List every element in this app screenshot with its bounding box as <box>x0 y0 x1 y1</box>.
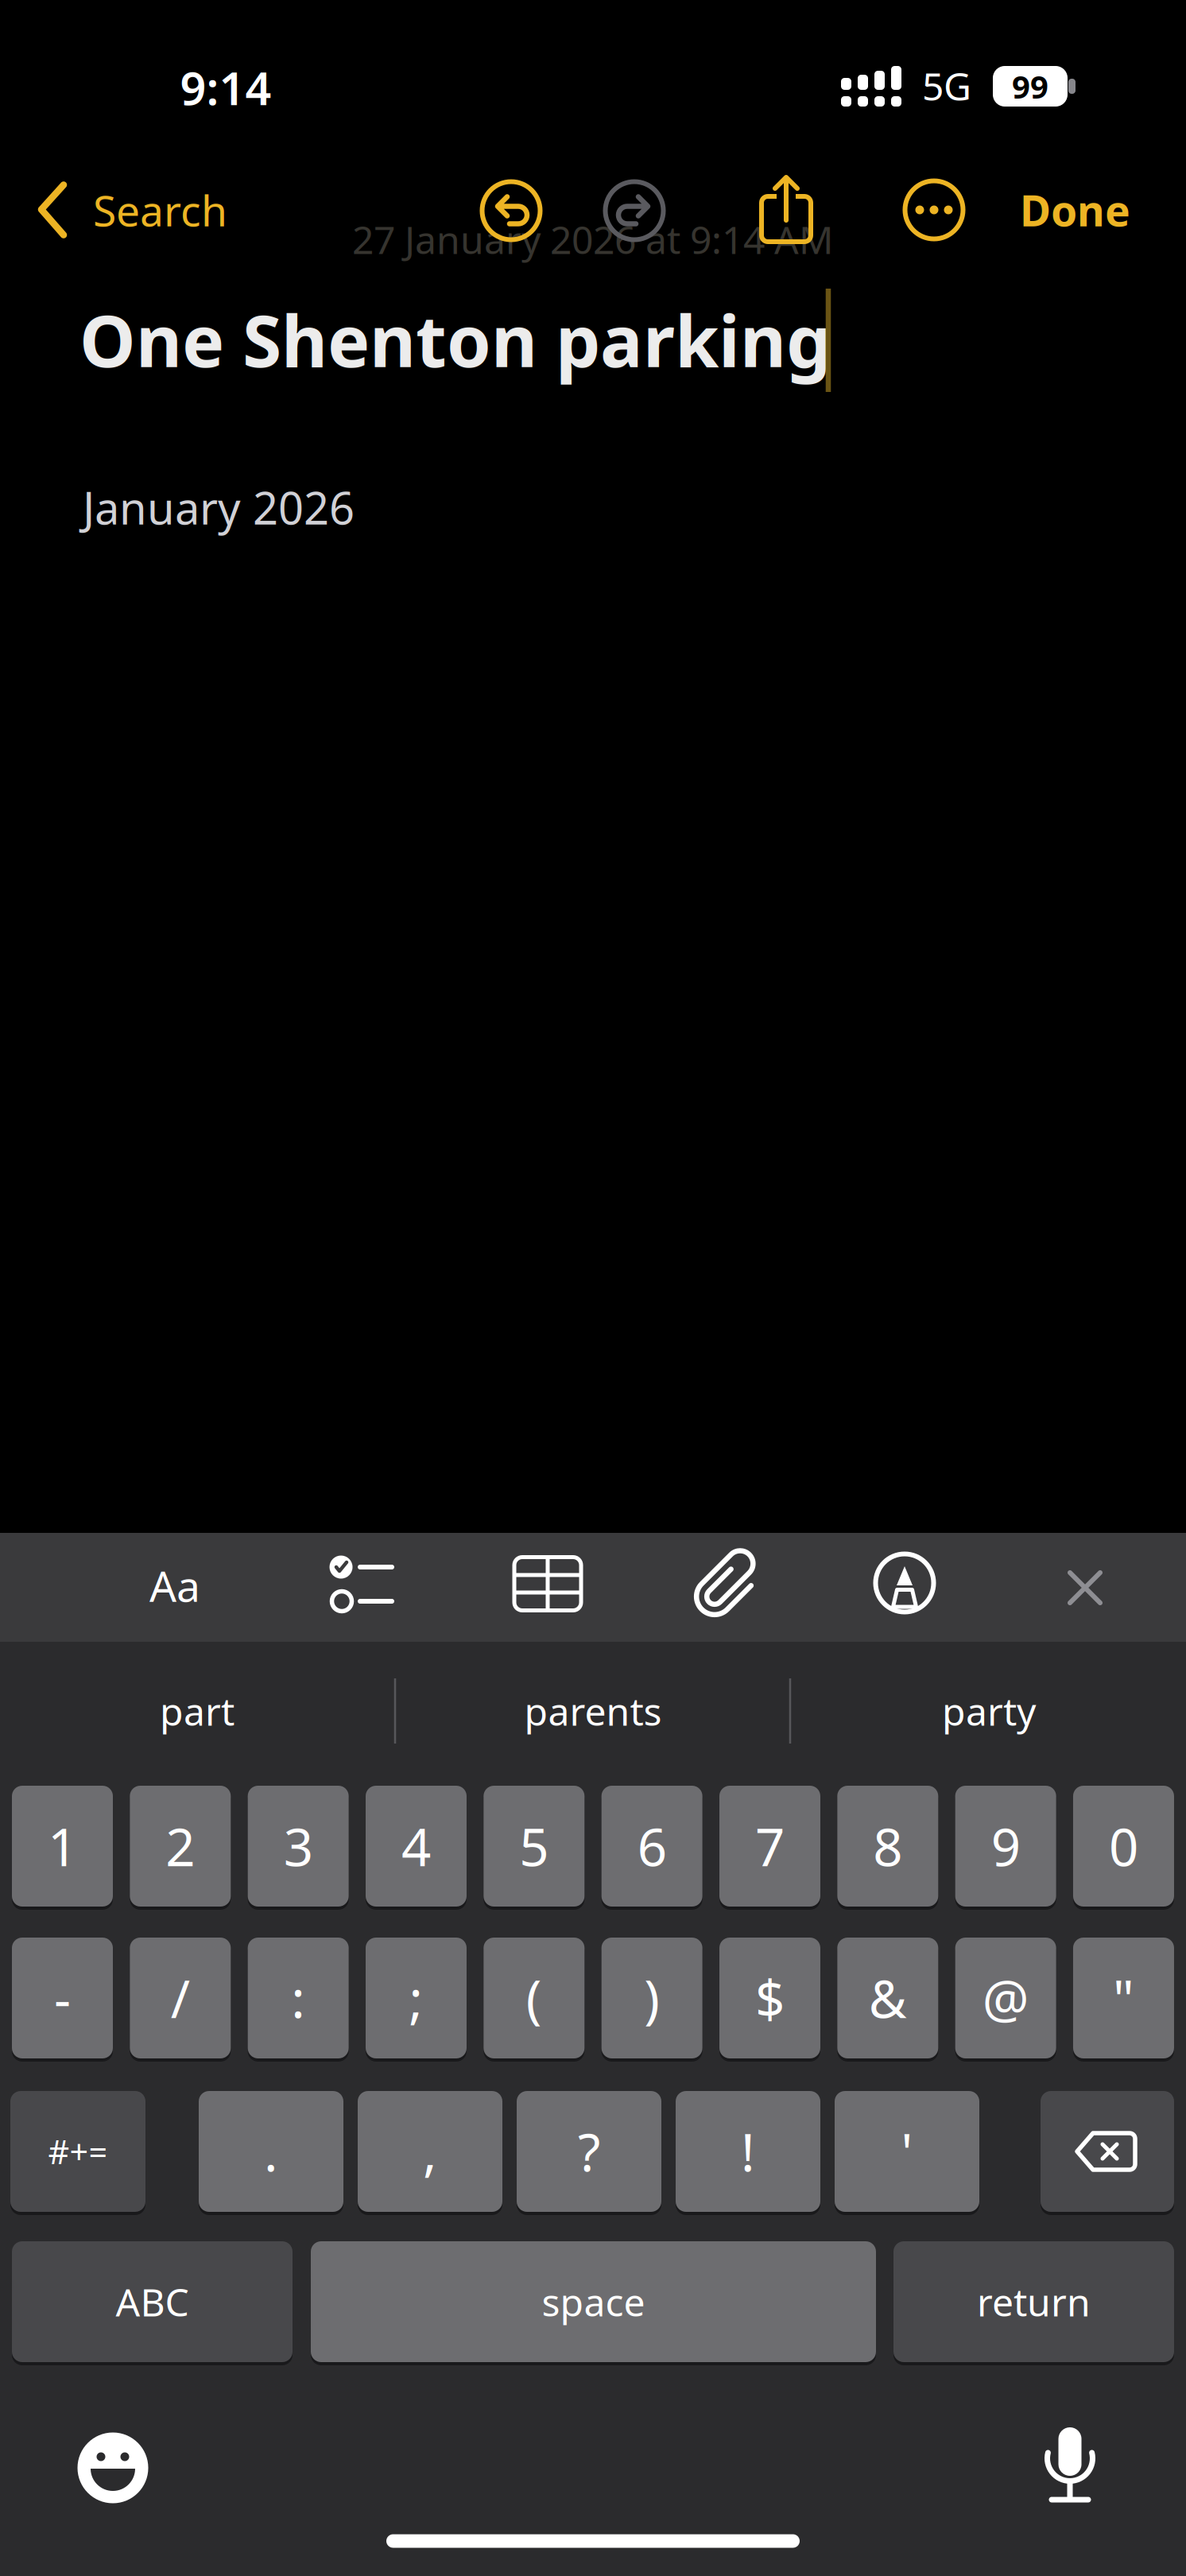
staticText: / <box>171 1963 190 2032</box>
button[interactable]: party <box>822 1663 1156 1759</box>
button[interactable]: 4 <box>366 1784 467 1908</box>
button[interactable]: 0 <box>1073 1784 1174 1908</box>
button[interactable]: ) <box>602 1936 702 2060</box>
staticText: Aa <box>149 1557 200 1613</box>
button[interactable]: 2 <box>130 1784 231 1908</box>
button[interactable]: part <box>30 1663 364 1759</box>
button[interactable]: Format <box>127 1546 223 1625</box>
button[interactable]: return <box>893 2240 1174 2364</box>
button[interactable]: Share <box>754 169 818 249</box>
staticText: part <box>160 1686 234 1736</box>
button[interactable]: Dictation <box>1034 2422 1106 2509</box>
button[interactable]: More <box>902 178 966 242</box>
staticText: 6 <box>637 1812 667 1881</box>
staticText: 99 <box>1012 65 1048 107</box>
staticText: #+= <box>48 2130 108 2173</box>
staticText: 7 <box>755 1812 785 1881</box>
staticText: 5G <box>922 61 971 111</box>
button[interactable]: Search <box>37 181 339 239</box>
button[interactable]: / <box>130 1936 231 2060</box>
staticText: 8 <box>873 1812 902 1881</box>
staticText: space <box>542 2276 645 2327</box>
staticText: 9 <box>991 1812 1020 1881</box>
staticText: 1 <box>48 1812 77 1881</box>
staticText: 27 January 2026 at 9:14 AM <box>352 214 834 265</box>
button[interactable]: Emoji <box>73 2428 153 2508</box>
button[interactable]: . <box>199 2089 343 2213</box>
button[interactable]: : <box>248 1936 349 2060</box>
button[interactable]: ; <box>366 1936 467 2060</box>
button[interactable]: 5 <box>484 1784 584 1908</box>
button[interactable]: 1 <box>12 1784 113 1908</box>
button[interactable]: Checklist <box>320 1550 399 1621</box>
staticText: 9:14 <box>180 57 271 118</box>
staticText: . <box>264 2117 278 2186</box>
button[interactable]: #+= <box>10 2089 145 2213</box>
staticText: & <box>869 1963 907 2032</box>
button[interactable]: Redo <box>605 182 663 240</box>
staticText: $ <box>755 1963 785 2032</box>
button[interactable]: Undo <box>482 182 540 240</box>
button[interactable]: ? <box>517 2089 661 2213</box>
button[interactable]: @ <box>955 1936 1056 2060</box>
staticText: Search <box>93 182 227 238</box>
staticText: 0 <box>1109 1812 1138 1881</box>
staticText: Done <box>1020 182 1130 238</box>
button[interactable]: parents <box>426 1663 760 1759</box>
staticText: ? <box>578 2117 600 2186</box>
button[interactable]: Table <box>508 1548 587 1620</box>
button[interactable]: Done <box>940 182 1130 238</box>
staticText: 5 <box>519 1812 549 1881</box>
staticText: ) <box>644 1963 660 2032</box>
button[interactable]: 9 <box>955 1784 1056 1908</box>
button[interactable]: " <box>1073 1936 1174 2060</box>
button[interactable]: ( <box>484 1936 584 2060</box>
staticText: One Shenton parking <box>79 292 831 387</box>
button[interactable]: ' <box>835 2089 979 2213</box>
button[interactable]: Dismiss keyboard <box>1065 1568 1105 1608</box>
button[interactable]: $ <box>719 1936 820 2060</box>
staticText: party <box>942 1686 1036 1736</box>
staticText: " <box>1113 1963 1134 2032</box>
staticText: 2 <box>166 1812 195 1881</box>
staticText: January 2026 <box>83 478 355 537</box>
staticText: 4 <box>401 1812 431 1881</box>
button[interactable]: - <box>12 1936 113 2060</box>
staticText: ABC <box>116 2276 189 2327</box>
button[interactable]: ABC <box>12 2240 293 2364</box>
staticText: ( <box>526 1963 542 2032</box>
button[interactable]: ! <box>676 2089 820 2213</box>
button[interactable]: & <box>837 1936 938 2060</box>
staticText: ! <box>741 2117 755 2186</box>
button[interactable]: Delete <box>1041 2089 1174 2213</box>
button[interactable]: , <box>358 2089 502 2213</box>
button[interactable]: 6 <box>602 1784 702 1908</box>
button[interactable]: space <box>311 2240 876 2364</box>
staticText: ; <box>409 1963 423 2032</box>
staticText: return <box>977 2276 1091 2327</box>
button[interactable]: 3 <box>248 1784 349 1908</box>
staticText: - <box>54 1963 71 2032</box>
button[interactable]: Markup <box>869 1547 940 1619</box>
button[interactable]: Attach <box>688 1544 767 1624</box>
staticText: , <box>423 2117 437 2186</box>
staticText: @ <box>982 1963 1029 2032</box>
staticText: : <box>291 1963 305 2032</box>
staticText: 3 <box>284 1812 313 1881</box>
staticText: ' <box>901 2117 913 2186</box>
staticText: parents <box>524 1686 662 1736</box>
button[interactable]: 8 <box>837 1784 938 1908</box>
button[interactable]: 7 <box>719 1784 820 1908</box>
